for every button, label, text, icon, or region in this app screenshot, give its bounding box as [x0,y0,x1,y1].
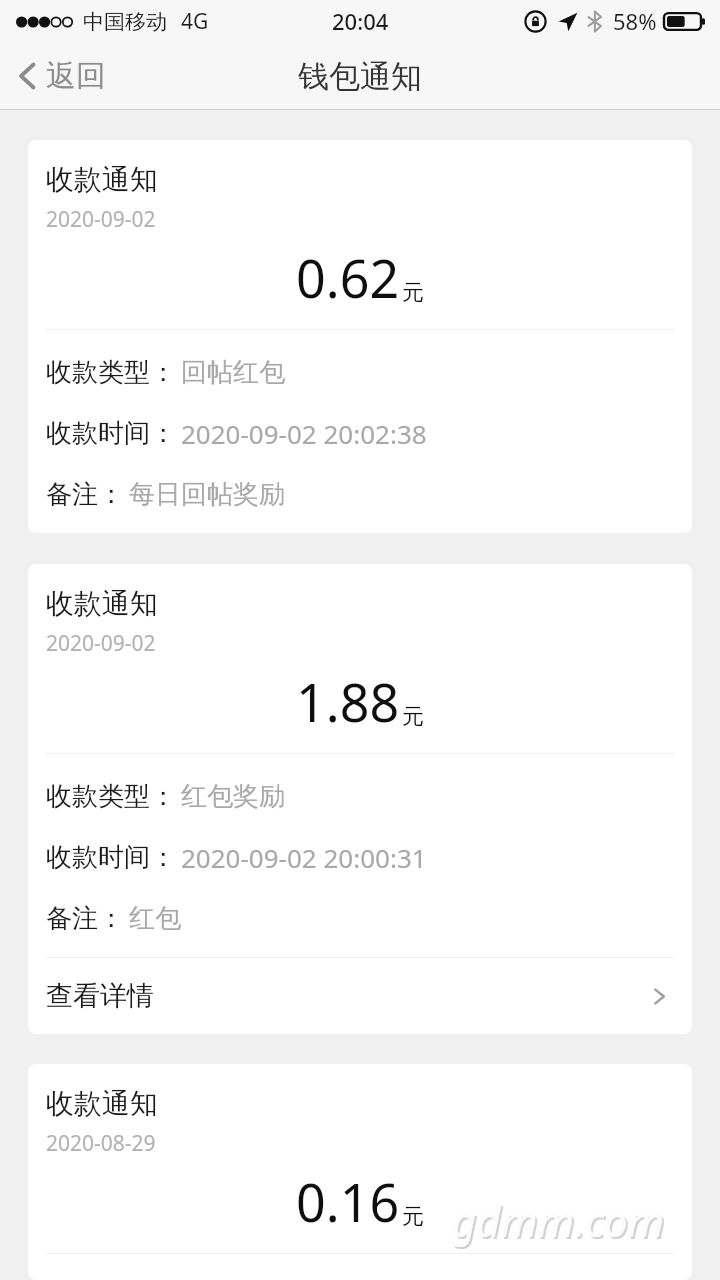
staticText: 收款通知 [46,162,158,197]
button[interactable]: 收款通知 [28,140,692,533]
staticText: 收款时间： [46,417,176,450]
staticText: 红包奖励 [181,780,285,813]
staticText: 元 [402,279,424,307]
staticText: 2020-09-02 20:00:31 [181,840,427,875]
button[interactable]: 查看详情 [28,958,692,1034]
staticText: 收款通知 [46,586,158,621]
staticText: 收款类型： [46,356,176,389]
staticText: 收款通知 [46,1086,158,1121]
staticText: 查看详情 [46,979,154,1013]
staticText: 钱包通知 [298,57,422,96]
staticText: 收款时间： [46,841,176,874]
staticText: 回帖红包 [181,356,285,389]
staticText: 元 [402,1203,424,1231]
staticText: 20:04 [332,6,389,36]
staticText: 2020-09-02 20:02:38 [181,416,427,451]
staticText: gdmm.com [454,1194,667,1251]
staticText: 1.88 [296,666,400,737]
button[interactable]: 收款通知 [28,1064,692,1280]
staticText: 备注： [46,478,124,511]
staticText: 4G [181,7,209,36]
other: 返回 [18,60,37,92]
staticText: 中国移动 [83,9,167,35]
staticText: 每日回帖奖励 [129,478,285,511]
staticText: 2020-09-02 [46,629,156,658]
staticText: 0.62 [296,242,400,313]
staticText: 元 [402,703,424,731]
button[interactable]: 收款通知 [28,564,692,1034]
staticText: 58% [613,6,657,36]
staticText: 红包 [129,902,181,935]
staticText: 返回 [46,57,106,95]
staticText: 收款类型： [46,780,176,813]
staticText: 0.16 [296,1166,400,1237]
button[interactable]: 返回 [0,45,130,107]
staticText: 2020-09-02 [46,205,156,234]
staticText: 备注： [46,902,124,935]
staticText: gdmm.com [452,1192,665,1249]
staticText: 2020-08-29 [46,1129,156,1158]
